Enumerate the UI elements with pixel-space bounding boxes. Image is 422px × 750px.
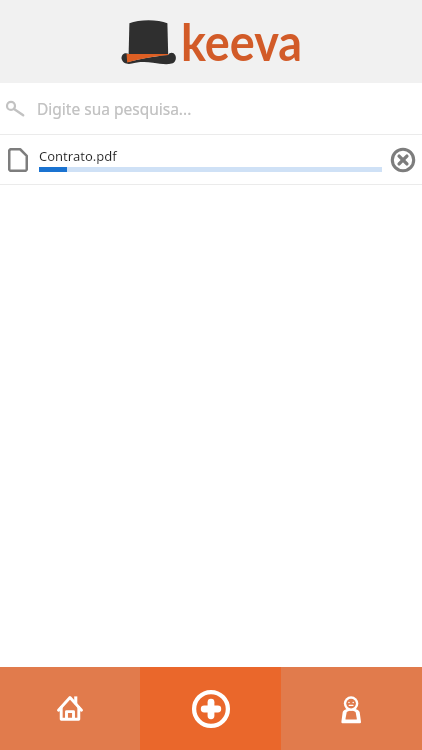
button[interactable]: Perfil	[281, 667, 422, 750]
button[interactable]: Início	[0, 667, 140, 750]
button[interactable]: Cancelar	[386, 143, 420, 177]
button[interactable]: Contrato.pdf	[0, 135, 422, 184]
staticText: keeva	[181, 10, 302, 72]
staticText: Digite sua pesquisa...	[37, 98, 192, 119]
button[interactable]: Digite sua pesquisa...	[0, 83, 422, 134]
staticText: Contrato.pdf	[39, 147, 117, 165]
button[interactable]: Adicionar	[140, 667, 281, 750]
